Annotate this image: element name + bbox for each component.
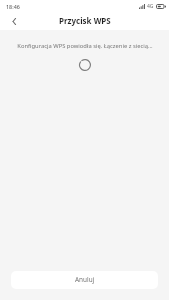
button[interactable]: Anuluj [11, 271, 158, 289]
button[interactable]: Back [6, 13, 23, 30]
staticText: 18:46 [6, 3, 20, 10]
staticText: Konfiguracja WPS powiodła się. Łączenie … [17, 42, 153, 50]
staticText: 4G [147, 3, 154, 10]
staticText: Anuluj [75, 275, 95, 284]
staticText: Przycisk WPS [59, 15, 111, 26]
